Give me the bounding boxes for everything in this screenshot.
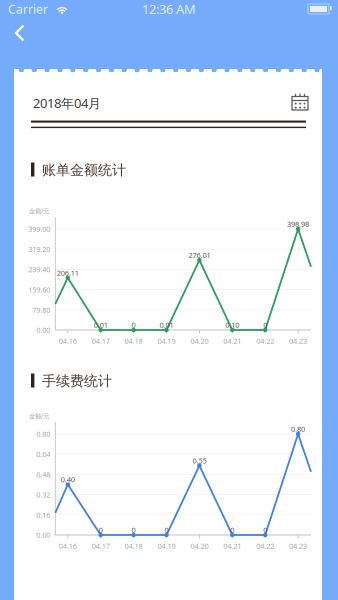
staticText: 0 bbox=[132, 320, 136, 330]
staticText: 0.00 bbox=[36, 530, 50, 540]
staticText: 2018年04月 bbox=[33, 94, 101, 112]
staticText: 04.23 bbox=[289, 336, 307, 346]
staticText: 276.01 bbox=[188, 250, 210, 260]
staticText: 0.40 bbox=[61, 474, 75, 484]
staticText: 0 bbox=[263, 525, 267, 535]
staticText: 12:36 AM bbox=[142, 0, 196, 18]
staticText: 0.48 bbox=[36, 469, 50, 479]
staticText: 0.10 bbox=[225, 320, 239, 330]
staticText: 0 bbox=[230, 525, 234, 535]
staticText: 04.17 bbox=[92, 336, 110, 346]
staticText: 04.17 bbox=[92, 541, 110, 551]
staticText: 239.40 bbox=[28, 264, 50, 274]
staticText: 0 bbox=[164, 525, 168, 535]
staticText: 206.11 bbox=[57, 268, 79, 278]
staticText: 0.80 bbox=[291, 424, 305, 434]
staticText: 金额/元 bbox=[29, 207, 49, 215]
button[interactable]: Choose month bbox=[288, 90, 314, 116]
staticText: 0.01 bbox=[94, 320, 108, 330]
staticText: 0 bbox=[99, 525, 103, 535]
staticText: 0.01 bbox=[159, 320, 173, 330]
staticText: 04.22 bbox=[256, 336, 274, 346]
staticText: 金额/元 bbox=[29, 412, 49, 420]
staticText: 04.21 bbox=[223, 336, 241, 346]
staticText: 04.23 bbox=[289, 541, 307, 551]
staticText: 手续费统计 bbox=[42, 372, 112, 390]
staticText: 04.19 bbox=[157, 541, 175, 551]
staticText: 0.32 bbox=[36, 490, 50, 500]
staticText: 319.20 bbox=[28, 244, 50, 254]
button[interactable]: Back bbox=[11, 23, 45, 57]
staticText: 账单金额统计 bbox=[42, 161, 126, 179]
staticText: 0 bbox=[263, 320, 267, 330]
staticText: 04.16 bbox=[59, 541, 77, 551]
staticText: 0.64 bbox=[36, 449, 50, 459]
staticText: 159.60 bbox=[28, 285, 50, 295]
staticText: 79.80 bbox=[32, 305, 50, 315]
staticText: 04.22 bbox=[256, 541, 274, 551]
staticText: 0.00 bbox=[36, 325, 50, 335]
staticText: 04.20 bbox=[190, 541, 208, 551]
staticText: 0.55 bbox=[192, 456, 206, 466]
staticText: 398.98 bbox=[287, 219, 309, 229]
staticText: 04.19 bbox=[157, 336, 175, 346]
staticText: 04.16 bbox=[59, 336, 77, 346]
staticText: 04.18 bbox=[125, 336, 143, 346]
staticText: 04.21 bbox=[223, 541, 241, 551]
staticText: 04.20 bbox=[190, 336, 208, 346]
staticText: 399.00 bbox=[28, 224, 50, 234]
staticText: 0.16 bbox=[36, 510, 50, 520]
staticText: 0 bbox=[132, 525, 136, 535]
staticText: 04.18 bbox=[125, 541, 143, 551]
staticText: 0.80 bbox=[36, 429, 50, 439]
staticText: Carrier bbox=[8, 1, 48, 17]
